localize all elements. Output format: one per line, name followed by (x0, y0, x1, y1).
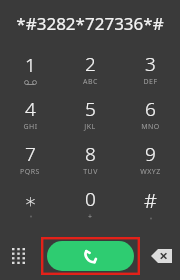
button[interactable]: 5 (60, 91, 120, 136)
button[interactable]: *#3282*727336*# (0, 0, 180, 46)
staticText: *#3282*727336*# (16, 12, 164, 35)
button[interactable]: Call (47, 241, 134, 271)
button[interactable]: Backspace (149, 247, 173, 265)
staticText: PQRS (20, 167, 40, 177)
button[interactable]: 1 (0, 46, 60, 91)
staticText: # (144, 187, 157, 214)
staticText: 3 (145, 51, 156, 77)
staticText: 7 (25, 141, 36, 167)
button[interactable]: ∗ (0, 181, 60, 226)
button[interactable]: 9 (120, 136, 180, 181)
staticText: ABC (83, 77, 98, 87)
staticText: 4 (25, 96, 36, 122)
staticText: 9 (145, 141, 156, 167)
staticText: 8 (85, 141, 96, 167)
button[interactable]: 2 (60, 46, 120, 91)
button[interactable]: 6 (120, 91, 180, 136)
staticText: ∗ (24, 189, 37, 212)
staticText: 0 (85, 186, 96, 212)
staticText: TUV (83, 167, 98, 177)
button[interactable]: Show dialpad (7, 245, 29, 267)
staticText: 6 (145, 96, 156, 122)
button[interactable]: # (120, 181, 180, 226)
staticText: 2 (85, 51, 96, 77)
staticText: DEF (143, 77, 158, 87)
button[interactable]: 0 (60, 181, 120, 226)
staticText: JKL (84, 122, 96, 132)
staticText: MNO (141, 122, 160, 132)
button[interactable]: 7 (0, 136, 60, 181)
button[interactable]: 3 (120, 46, 180, 91)
staticText: WXYZ (140, 167, 161, 177)
staticText: GHI (23, 122, 38, 132)
button[interactable]: 4 (0, 91, 60, 136)
staticText: 5 (85, 96, 96, 122)
staticText: + (88, 212, 93, 222)
button[interactable]: 8 (60, 136, 120, 181)
staticText: 1 (25, 52, 36, 78)
